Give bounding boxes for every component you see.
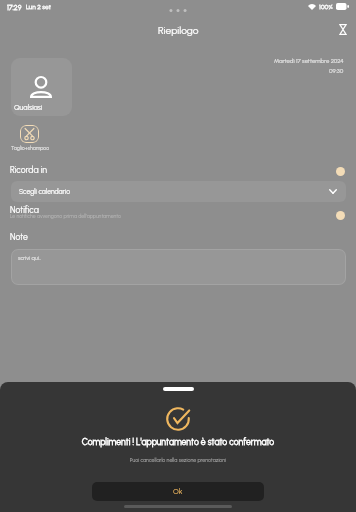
button[interactable]: Scegli calendario	[11, 181, 346, 202]
staticText: Qualsiasi	[14, 103, 43, 112]
staticText: Scegli calendario	[19, 188, 70, 196]
staticText: Puoi cancellarlo nella sezione prenotazi…	[0, 457, 356, 463]
staticText: Lun 2 set	[26, 3, 51, 11]
staticText: Taglio+shampoo	[11, 145, 50, 151]
staticText: Complimenti ! L'appuntamento è stato con…	[0, 437, 356, 447]
button[interactable]: Taglio e shampoo	[20, 125, 39, 143]
staticText: 17:29	[7, 3, 22, 11]
staticText: Riepilogo	[158, 24, 199, 36]
button[interactable]: Ok	[92, 482, 264, 501]
staticText: Notifica	[10, 205, 39, 215]
staticText: scrivi qui..	[18, 255, 41, 262]
staticText: Note	[10, 232, 28, 242]
staticText: Le notifiche avvengono prima dell'appunt…	[10, 213, 121, 219]
button[interactable]: scrivi qui..	[11, 249, 346, 285]
staticText: 100%	[319, 3, 333, 11]
button[interactable]: In attesa	[334, 21, 351, 38]
staticText: Martedì 17 settembre 2024	[274, 57, 344, 64]
staticText: Ricorda in	[10, 165, 47, 175]
staticText: Ok	[173, 487, 183, 496]
button[interactable]: Qualsiasi	[11, 58, 72, 116]
staticText: 09:30	[329, 67, 344, 74]
